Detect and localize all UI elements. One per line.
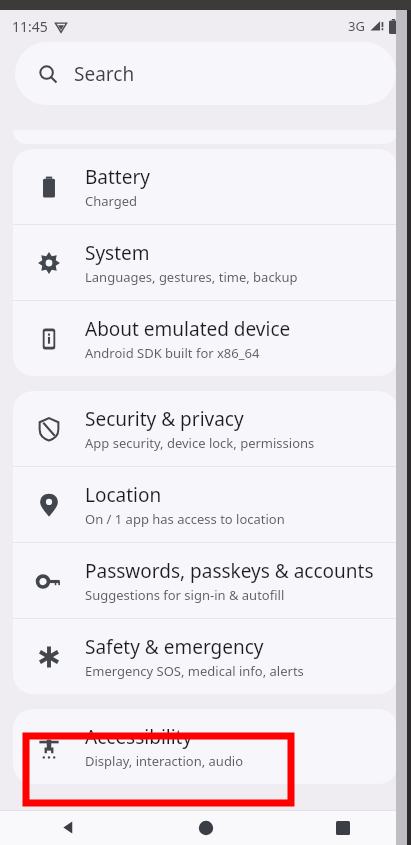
button[interactable]: Home (137, 810, 274, 845)
staticText: 3G (348, 17, 365, 35)
button[interactable]: Accessibility (13, 709, 398, 784)
button[interactable]: Search (15, 42, 396, 105)
staticText: Battery (85, 164, 150, 190)
button[interactable]: Recent apps (274, 810, 411, 845)
staticText: System (85, 240, 150, 266)
staticText: Android SDK built for x86_64 (85, 344, 260, 362)
staticText: Accessibility (85, 724, 193, 750)
staticText: Suggestions for sign-in & autofill (85, 586, 285, 604)
button[interactable]: Safety & emergency (13, 619, 398, 694)
staticText: 11:45 (12, 17, 48, 36)
staticText: Charged (85, 192, 138, 210)
staticText: Security & privacy (85, 406, 244, 432)
button[interactable]: Back (0, 810, 137, 845)
staticText: Languages, gestures, time, backup (85, 268, 298, 286)
button[interactable]: Battery (13, 149, 398, 224)
staticText: Safety & emergency (85, 634, 264, 660)
button[interactable]: System (13, 225, 398, 300)
button[interactable]: Location (13, 467, 398, 542)
button[interactable]: Security & privacy (13, 391, 398, 466)
staticText: Emergency SOS, medical info, alerts (85, 662, 304, 680)
button[interactable]: About emulated device (13, 301, 398, 376)
staticText: Display, interaction, audio (85, 752, 244, 770)
staticText: On / 1 app has access to location (85, 510, 285, 528)
button[interactable]: Passwords, passkeys & accounts (13, 543, 398, 618)
staticText: Search (74, 61, 135, 87)
staticText: Passwords, passkeys & accounts (85, 558, 374, 584)
staticText: App security, device lock, permissions (85, 434, 315, 452)
staticText: Location (85, 482, 162, 508)
staticText: About emulated device (85, 316, 291, 342)
